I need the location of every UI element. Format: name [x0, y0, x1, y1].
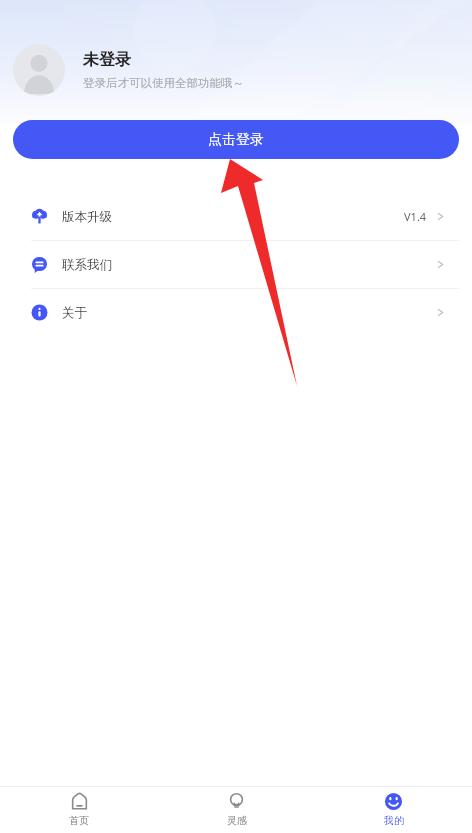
staticText: V1.4: [404, 209, 427, 224]
button[interactable]: 未登录: [13, 44, 459, 96]
staticText: 灵感: [227, 814, 247, 827]
button[interactable]: 首页: [0, 787, 158, 827]
staticText: 我的: [384, 814, 404, 827]
button[interactable]: 我的: [315, 787, 472, 827]
staticText: 关于: [62, 305, 87, 321]
staticText: 版本升级: [62, 209, 112, 225]
staticText: 点击登录: [208, 131, 264, 149]
staticText: 未登录: [83, 50, 131, 70]
button[interactable]: 点击登录: [13, 120, 459, 159]
button[interactable]: 联系我们: [13, 241, 459, 288]
staticText: 联系我们: [62, 257, 112, 273]
button[interactable]: 灵感: [158, 787, 315, 827]
staticText: 首页: [69, 814, 89, 827]
staticText: 登录后才可以使用全部功能哦～: [83, 76, 244, 90]
button[interactable]: 版本升级: [13, 193, 459, 240]
button[interactable]: 关于: [13, 289, 459, 336]
